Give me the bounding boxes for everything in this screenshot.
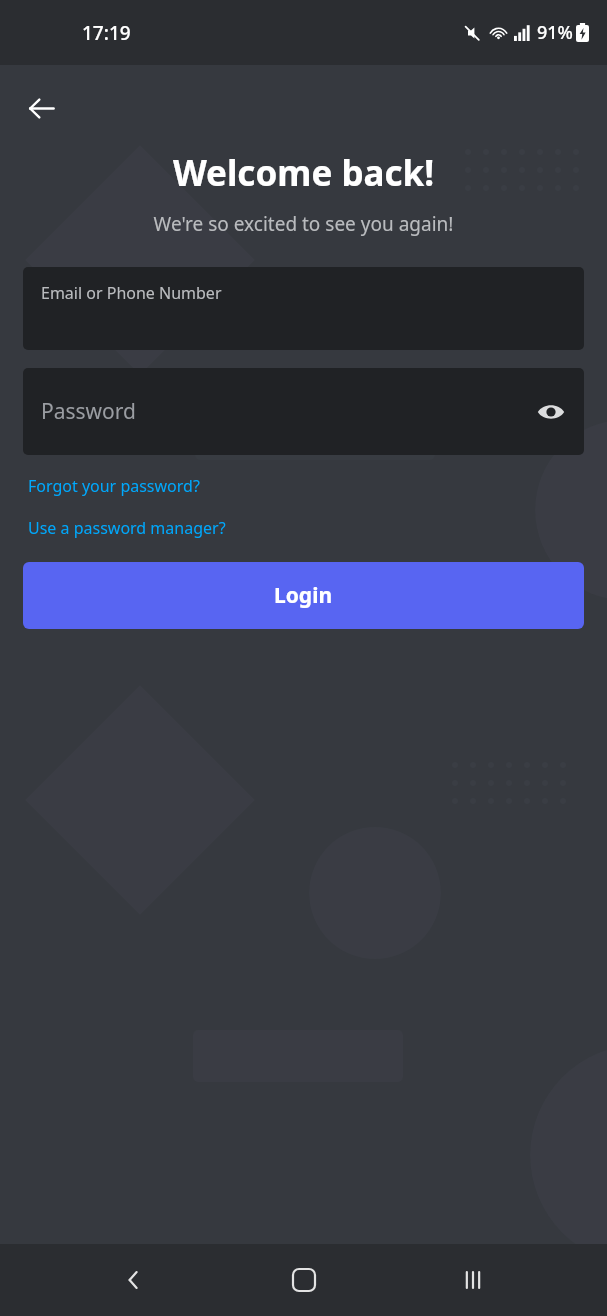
button[interactable]: Forgot your password? <box>23 471 205 501</box>
button[interactable]: Use a password manager? <box>23 513 231 543</box>
staticText: Forgot your password? <box>28 475 200 497</box>
button[interactable]: Email or Phone Number <box>23 267 584 350</box>
button[interactable]: Password <box>23 368 584 455</box>
staticText: Login <box>274 581 333 610</box>
button[interactable]: Login <box>23 562 584 629</box>
staticText: Welcome back! <box>0 149 607 197</box>
button[interactable]: Back <box>99 1245 169 1315</box>
staticText: Use a password manager? <box>28 517 226 539</box>
staticText: 91% <box>537 20 573 45</box>
button[interactable]: Recents <box>438 1245 508 1315</box>
button[interactable]: Show password <box>528 389 574 435</box>
button[interactable]: Back <box>14 81 68 135</box>
button[interactable]: Home <box>269 1245 339 1315</box>
staticText: Password <box>41 397 136 426</box>
staticText: Email or Phone Number <box>41 282 222 304</box>
staticText: 17:19 <box>82 20 131 46</box>
staticText: We're so excited to see you again! <box>0 211 607 237</box>
